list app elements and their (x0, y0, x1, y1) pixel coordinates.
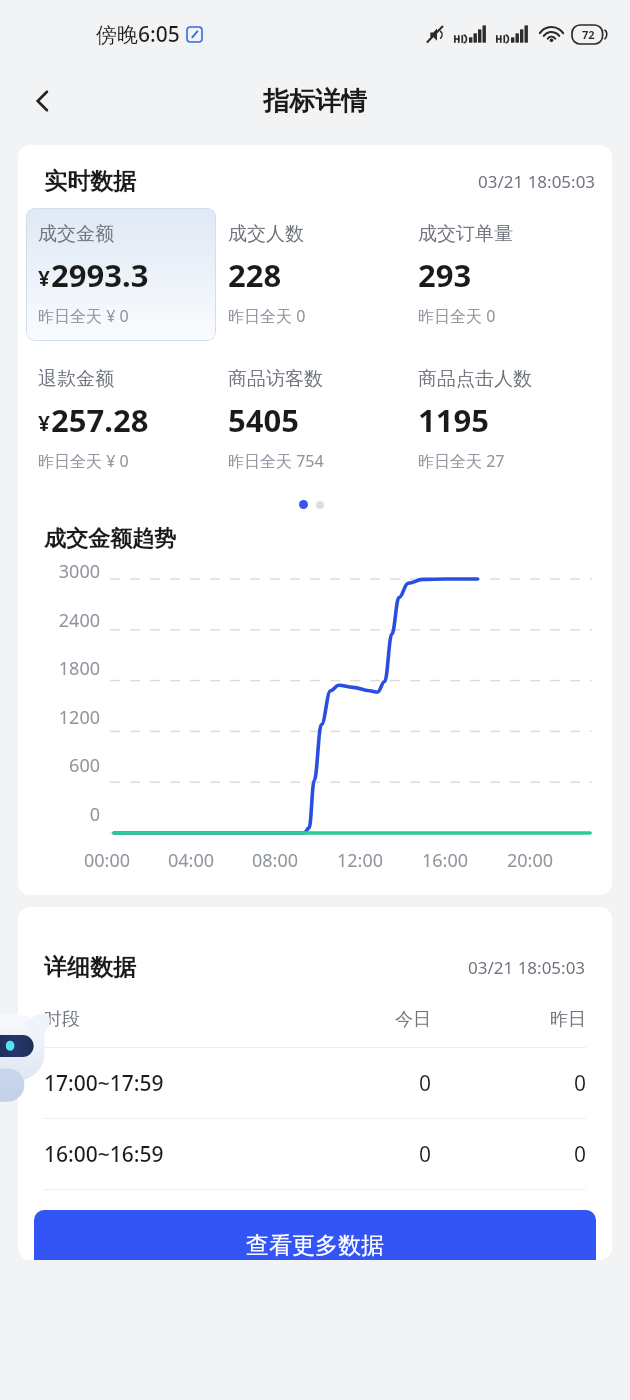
staticText: 0 (276, 1140, 431, 1169)
button[interactable]: 查看更多数据 (34, 1210, 596, 1260)
staticText: 成交订单量 (418, 222, 513, 246)
staticText: 5405 (228, 399, 299, 441)
button[interactable]: 14:00~14:59 (44, 1190, 586, 1260)
staticText: 228 (228, 254, 282, 296)
staticText: 08:00 (252, 848, 299, 873)
button[interactable]: 17:00~17:59 (44, 1048, 586, 1118)
staticText: 商品点击人数 (418, 367, 532, 391)
staticText: 昨日全天 27 (418, 450, 505, 472)
staticText: 03/21 18:05:03 (478, 170, 596, 193)
staticText: ¥ (38, 264, 51, 293)
staticText: 17:00~17:59 (44, 1069, 276, 1098)
staticText: 00:00 (84, 848, 131, 873)
staticText: 0 (26, 802, 100, 827)
staticText: 03/21 18:05:03 (468, 956, 586, 979)
staticText: 商品访客数 (228, 367, 323, 391)
button[interactable]: 成交订单量 (406, 208, 596, 341)
staticText: 1195 (418, 399, 489, 441)
staticText: 1800 (26, 656, 100, 681)
staticText: 傍晚6:05 (96, 20, 180, 49)
staticText: 1200 (26, 705, 100, 730)
staticText: 72 (582, 27, 595, 42)
staticText: 昨日全天 ¥ 0 (38, 450, 129, 472)
button[interactable]: 退款金额 (26, 353, 216, 486)
staticText: 0 (431, 1140, 586, 1169)
staticText: 600 (26, 753, 100, 778)
staticText: ¥ (38, 409, 51, 438)
staticText: 14:00~14:59 (44, 1211, 276, 1240)
staticText: 昨日全天 754 (228, 450, 324, 472)
staticText: 成交人数 (228, 222, 304, 246)
staticText: 指标详情 (263, 85, 367, 118)
button[interactable]: 商品访客数 (216, 353, 406, 486)
button[interactable]: Back (20, 78, 66, 124)
button[interactable]: 成交金额 (26, 208, 216, 341)
staticText: 04:00 (168, 848, 215, 873)
button[interactable]: 商品点击人数 (406, 353, 596, 486)
staticText: 293 (418, 254, 472, 296)
staticText: 20:00 (507, 848, 554, 873)
staticText: 0 (431, 1069, 586, 1098)
staticText: 0 (276, 1069, 431, 1098)
staticText: 2993.3 (51, 254, 149, 296)
staticText: 3000 (26, 559, 100, 584)
staticText: 257.28 (51, 399, 149, 441)
staticText: 详细数据 (44, 953, 136, 982)
staticText: 2400 (26, 608, 100, 633)
staticText: 30.5 (276, 1211, 431, 1240)
staticText: 昨日全天 0 (228, 305, 306, 327)
staticText: 昨日全天 ¥ 0 (38, 305, 129, 327)
staticText: 时段 (44, 1008, 276, 1031)
staticText: 成交金额趋势 (44, 525, 176, 553)
staticText: 12:00 (337, 848, 384, 873)
staticText: 查看更多数据 (246, 1231, 384, 1260)
staticText: 昨日全天 0 (418, 305, 496, 327)
button[interactable]: 成交人数 (216, 208, 406, 341)
button[interactable]: Assistant (0, 1006, 58, 1110)
staticText: 今日 (276, 1008, 431, 1031)
staticText: 昨日 (431, 1008, 586, 1031)
staticText: 实时数据 (44, 167, 136, 196)
staticText: 成交金额 (38, 222, 114, 246)
staticText: 16:00 (422, 848, 469, 873)
staticText: 16:00~16:59 (44, 1140, 276, 1169)
button[interactable]: 16:00~16:59 (44, 1119, 586, 1189)
staticText: 退款金额 (38, 367, 114, 391)
